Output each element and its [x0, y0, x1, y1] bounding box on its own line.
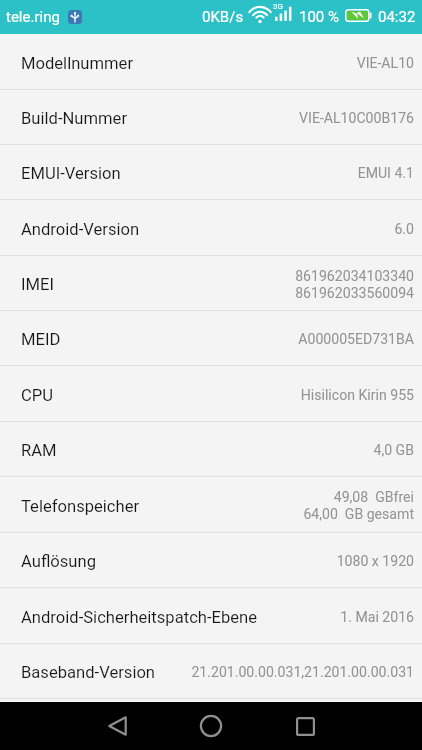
- button[interactable]: CPU: [0, 366, 422, 422]
- staticText: VIE-AL10: [356, 55, 414, 72]
- staticText: Android-Sicherheitspatch-Ebene: [21, 608, 258, 627]
- staticText: MEID: [21, 330, 61, 349]
- staticText: 0KB/s: [202, 8, 244, 26]
- staticText: Android-Version: [21, 220, 140, 239]
- staticText: CPU: [21, 386, 54, 405]
- staticText: 6.0: [394, 221, 414, 238]
- staticText: Telefonspeicher: [21, 497, 140, 516]
- button[interactable]: Build-Nummer: [0, 90, 422, 145]
- button[interactable]: Android-Sicherheitspatch-Ebene: [0, 588, 422, 644]
- staticText: Auflösung: [21, 552, 96, 571]
- button[interactable]: Auflösung: [0, 533, 422, 588]
- button[interactable]: RAM: [0, 422, 422, 477]
- staticText: IMEI: [21, 275, 54, 294]
- button[interactable]: Modellnummer: [0, 34, 422, 90]
- staticText: 861962034103340: [295, 268, 414, 285]
- staticText: Baseband-Version: [21, 663, 156, 682]
- button[interactable]: Back: [94, 703, 140, 749]
- button[interactable]: Android-Version: [0, 200, 422, 256]
- staticText: 04:32: [378, 8, 416, 26]
- staticText: Build-Nummer: [21, 109, 128, 128]
- button[interactable]: IMEI: [0, 256, 422, 311]
- staticText: 4,0 GB: [373, 442, 414, 459]
- staticText: tele.ring: [6, 8, 60, 26]
- staticText: A000005ED731BA: [298, 331, 414, 348]
- staticText: 1080 x 1920: [336, 553, 414, 570]
- button[interactable]: Recents: [282, 703, 328, 749]
- staticText: Modellnummer: [21, 54, 134, 73]
- staticText: EMUI-Version: [21, 164, 121, 183]
- staticText: 1. Mai 2016: [340, 609, 414, 626]
- button[interactable]: Baseband-Version: [0, 644, 422, 699]
- button[interactable]: Home: [188, 703, 234, 749]
- staticText: 100 %: [299, 8, 339, 26]
- staticText: 21.201.00.00.031,21.201.00.00.031: [191, 664, 414, 681]
- staticText: 49,08 GBfrei: [333, 489, 414, 506]
- staticText: 861962033560094: [295, 285, 414, 302]
- button[interactable]: Telefonspeicher: [0, 477, 422, 533]
- staticText: EMUI 4.1: [357, 165, 414, 182]
- staticText: Hisilicon Kirin 955: [300, 387, 414, 404]
- staticText: 64,00 GB gesamt: [303, 506, 414, 523]
- staticText: VIE-AL10C00B176: [299, 110, 414, 127]
- staticText: 3G: [273, 2, 283, 11]
- staticText: RAM: [21, 441, 57, 460]
- button[interactable]: EMUI-Version: [0, 145, 422, 200]
- button[interactable]: MEID: [0, 311, 422, 366]
